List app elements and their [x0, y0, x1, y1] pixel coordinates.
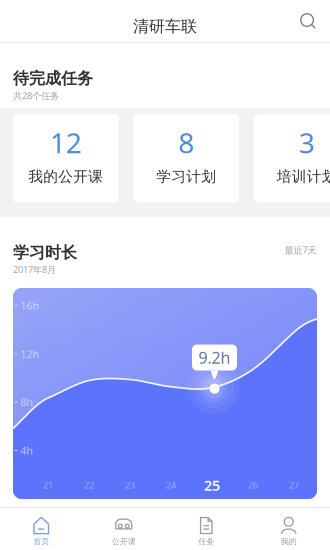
staticText: 25 — [204, 475, 220, 495]
button[interactable]: 3 — [254, 114, 330, 202]
staticText: 3 — [299, 124, 315, 161]
staticText: 我的 — [281, 537, 297, 546]
staticText: 12 — [50, 124, 82, 161]
staticText: 22 — [84, 479, 94, 491]
staticText: 8h — [20, 395, 33, 409]
staticText: 2017年8月 — [13, 263, 56, 276]
staticText: 23 — [125, 479, 135, 491]
staticText: 任务 — [198, 537, 214, 546]
staticText: 12h — [20, 347, 39, 361]
staticText: 27 — [289, 479, 299, 491]
staticText: 待完成任务 — [13, 69, 93, 88]
staticText: 最近7天 — [284, 244, 316, 256]
staticText: 26 — [248, 479, 258, 491]
button[interactable]: 8 — [133, 114, 239, 202]
staticText: 9.2h — [198, 347, 230, 368]
button[interactable]: 我的 — [247, 508, 330, 550]
button[interactable]: 公开课 — [82, 508, 165, 550]
staticText: 首页 — [33, 537, 49, 546]
staticText: 共28个任务 — [13, 89, 59, 102]
button[interactable]: 12 — [13, 114, 118, 202]
staticText: 21 — [43, 479, 53, 491]
staticText: 4h — [20, 443, 33, 458]
staticText: 清研车联 — [133, 17, 197, 36]
button[interactable]: 首页 — [0, 508, 82, 550]
button[interactable]: Search — [286, 0, 330, 42]
staticText: 16h — [20, 298, 39, 313]
staticText: 8 — [178, 124, 194, 161]
staticText: 学习计划 — [156, 168, 216, 186]
staticText: 我的公开课 — [28, 168, 103, 186]
staticText: 培训计划 — [277, 168, 330, 186]
button[interactable]: 任务 — [165, 508, 247, 550]
staticText: 24 — [166, 479, 176, 491]
staticText: 学习时长 — [13, 243, 77, 262]
staticText: 公开课 — [112, 537, 136, 546]
